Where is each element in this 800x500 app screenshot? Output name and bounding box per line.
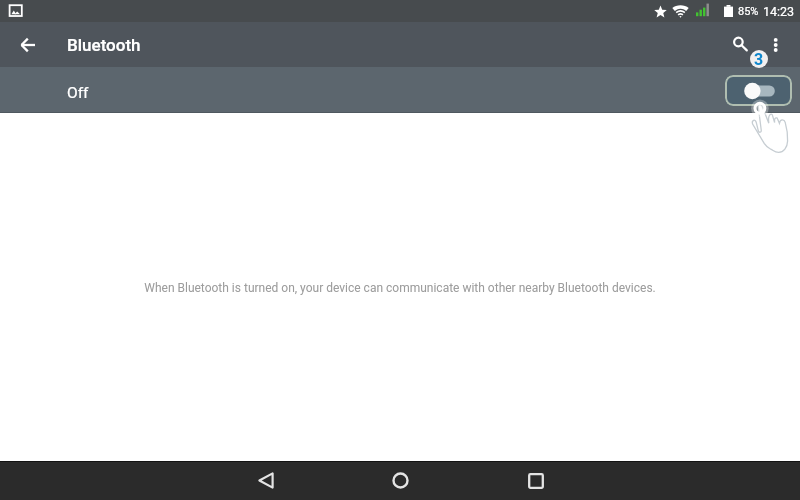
staticText: When Bluetooth is turned on, your device…	[144, 281, 656, 295]
button[interactable]: Back	[244, 461, 288, 500]
button[interactable]: Search	[716, 23, 760, 67]
staticText: 3	[754, 50, 764, 68]
button[interactable]: Navigate up	[6, 24, 50, 68]
staticText: Bluetooth	[67, 35, 141, 55]
staticText: 85%	[738, 5, 759, 18]
staticText: Off	[67, 84, 89, 102]
button[interactable]: Home	[378, 461, 422, 500]
button[interactable]: Bluetooth on/off switch	[725, 75, 792, 106]
button[interactable]: Recent apps	[514, 461, 558, 500]
button[interactable]: Off	[0, 67, 800, 113]
staticText: 14:23	[763, 4, 795, 19]
button[interactable]: More options	[758, 27, 794, 63]
